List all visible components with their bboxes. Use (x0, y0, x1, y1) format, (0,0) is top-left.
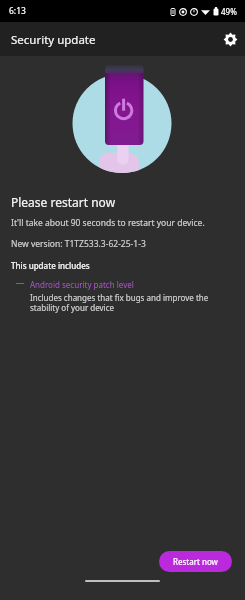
button[interactable]: Settings (219, 28, 241, 50)
staticText: It'll take about 90 seconds to restart y… (11, 217, 205, 229)
button[interactable]: Restart now (159, 551, 232, 572)
staticText: Security update (11, 32, 96, 48)
staticText: Please restart now (11, 194, 116, 210)
staticText: Android security patch level (30, 279, 134, 290)
staticText: 6:13 (9, 5, 26, 17)
staticText: Restart now (173, 556, 218, 567)
staticText: New version: T1TZ533.3-62-25-1-3 (11, 238, 146, 250)
staticText: Includes changes that fix bugs and impro… (30, 292, 234, 313)
staticText: 49% (221, 6, 237, 17)
staticText: This update includes (11, 260, 90, 271)
